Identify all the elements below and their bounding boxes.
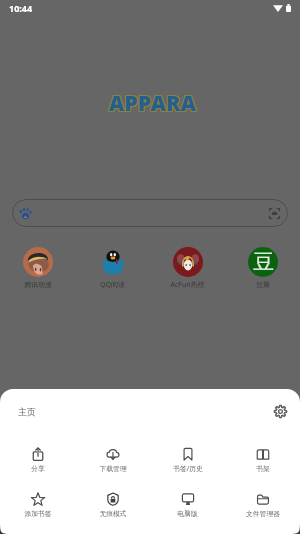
staticText: 书架: [256, 464, 270, 473]
staticText: 文件管理器: [246, 509, 280, 518]
staticText: APPARA: [110, 89, 198, 118]
staticText: 主页: [18, 406, 36, 417]
staticText: 10:44: [9, 2, 33, 14]
staticText: 豆: [253, 249, 274, 275]
staticText: 豆瓣: [256, 280, 270, 289]
staticText: 电脑版: [177, 509, 198, 518]
button[interactable]: 豆: [225, 247, 300, 289]
staticText: APPARA: [108, 89, 196, 118]
button[interactable]: Settings: [269, 400, 291, 422]
button[interactable]: Search: [12, 199, 288, 227]
staticText: 无痕模式: [99, 509, 127, 518]
button[interactable]: 无痕模式: [75, 482, 150, 527]
button[interactable]: 添加书签: [0, 482, 75, 527]
button[interactable]: 文件管理器: [225, 482, 300, 527]
staticText: 添加书签: [24, 509, 52, 518]
button[interactable]: 下载管理: [75, 437, 150, 482]
button[interactable]: 腾讯动漫: [0, 247, 75, 289]
staticText: APPARA: [109, 90, 197, 119]
staticText: 书签/历史: [173, 464, 203, 473]
button[interactable]: 分享: [0, 437, 75, 482]
staticText: QQ阅读: [100, 280, 125, 290]
staticText: 分享: [31, 464, 45, 473]
staticText: APPARA: [110, 90, 198, 119]
staticText: 腾讯动漫: [24, 280, 52, 289]
staticText: AcFun热榜: [170, 280, 205, 290]
staticText: 下载管理: [99, 464, 127, 473]
staticText: APPARA: [109, 89, 197, 118]
button[interactable]: 书签/历史: [150, 437, 225, 482]
button[interactable]: QQ阅读: [75, 247, 150, 290]
staticText: APPARA: [110, 88, 198, 117]
staticText: APPARA: [108, 88, 196, 117]
button[interactable]: 书架: [225, 437, 300, 482]
staticText: APPARA: [108, 90, 196, 119]
button[interactable]: 电脑版: [150, 482, 225, 527]
button[interactable]: AcFun热榜: [150, 247, 225, 290]
